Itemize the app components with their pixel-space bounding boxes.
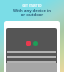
button[interactable]: Green app (33, 41, 38, 46)
staticText: With any device in or outdoor (0, 8, 64, 17)
button[interactable]: Red app (26, 41, 31, 46)
staticText: GET STARTED (22, 4, 42, 8)
